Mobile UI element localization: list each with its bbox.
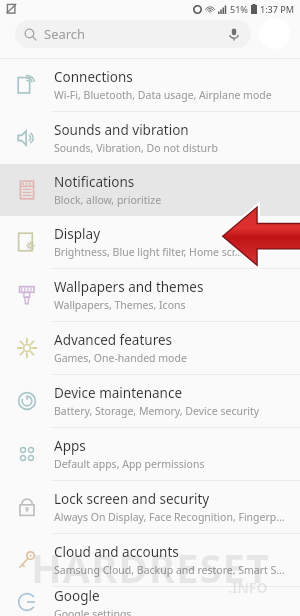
staticText: Samsung Cloud, Backup and restore, Smart… — [54, 563, 288, 577]
staticText: Device maintenance — [54, 384, 183, 402]
staticText: Default apps, App permissions — [54, 457, 205, 471]
button[interactable]: Lock screen and security — [0, 481, 300, 533]
staticText: Sounds, Vibration, Do not disturb — [54, 141, 218, 155]
button[interactable]: Connections — [0, 59, 300, 111]
button[interactable]: Wallpapers and themes — [0, 269, 300, 321]
staticText: Display — [54, 225, 101, 243]
staticText: Google settings — [54, 607, 132, 616]
staticText: Wallpapers, Themes, Icons — [54, 298, 186, 312]
other: Pointer arrow to Display — [222, 205, 300, 265]
button[interactable]: Cloud and accounts — [0, 534, 300, 586]
staticText: Sounds and vibration — [54, 121, 189, 139]
button[interactable]: Notifications — [0, 164, 300, 216]
staticText: Advanced features — [54, 331, 173, 349]
staticText: 1:37 PM — [260, 3, 294, 15]
staticText: Wi-Fi, Bluetooth, Data usage, Airplane m… — [54, 88, 272, 102]
staticText: 51% — [230, 3, 248, 15]
staticText: Battery, Storage, Memory, Device securit… — [54, 404, 260, 418]
button[interactable]: Device maintenance — [0, 375, 300, 427]
staticText: Brightness, Blue light filter, Home scr… — [54, 245, 243, 259]
button[interactable]: Apps — [0, 428, 300, 480]
button[interactable]: Sounds and vibration — [0, 112, 300, 164]
staticText: Wallpapers and themes — [54, 278, 204, 296]
staticText: Apps — [54, 437, 86, 455]
button[interactable]: Voice search — [226, 26, 242, 42]
button[interactable]: Google — [0, 587, 300, 616]
staticText: Lock screen and security — [54, 490, 210, 508]
staticText: Always On Display, Face Recognition, Fin… — [54, 510, 288, 524]
button[interactable]: Display — [0, 216, 300, 268]
staticText: .INFO — [228, 578, 268, 597]
staticText: Google — [54, 587, 100, 605]
staticText: Block, allow, prioritize — [54, 193, 162, 207]
staticText: Cloud and accounts — [54, 543, 179, 561]
staticText: HARDRESET — [31, 540, 270, 594]
button[interactable]: Advanced features — [0, 322, 300, 374]
button[interactable]: Search — [15, 20, 251, 48]
staticText: Search — [44, 25, 86, 43]
staticText: Connections — [54, 68, 133, 86]
staticText: Games, One-handed mode — [54, 351, 187, 365]
staticText: Notifications — [54, 173, 135, 191]
